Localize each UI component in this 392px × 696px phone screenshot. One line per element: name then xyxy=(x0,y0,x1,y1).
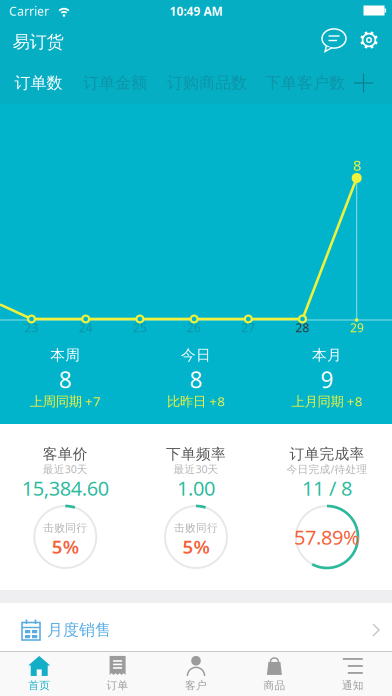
staticText: 1.00 xyxy=(177,475,215,501)
staticText: 5% xyxy=(182,534,209,559)
staticText: 今日完成/待处理 xyxy=(286,462,367,476)
staticText: 11 / 8 xyxy=(302,475,352,501)
staticText: 订购商品数 xyxy=(167,73,247,93)
staticText: 月度销售 xyxy=(47,620,111,640)
staticText: 最近30天 xyxy=(43,462,88,476)
staticText: 本周 xyxy=(50,346,80,364)
button[interactable]: 订单 xyxy=(78,651,157,696)
button[interactable]: Add metric xyxy=(351,71,375,95)
staticText: 23 xyxy=(24,319,38,335)
staticText: 通知 xyxy=(342,679,364,692)
staticText: 下单频率 xyxy=(166,445,226,463)
button[interactable]: 首页 xyxy=(0,651,78,696)
button[interactable]: 订单数 xyxy=(14,73,62,93)
staticText: 易订货 xyxy=(12,31,63,53)
staticText: 客户 xyxy=(185,679,207,692)
staticText: 订单数 xyxy=(14,73,62,93)
staticText: 订单完成率 xyxy=(289,445,364,463)
button[interactable]: 订购商品数 xyxy=(167,73,247,93)
button[interactable]: 月度销售 xyxy=(0,603,392,651)
button[interactable]: 订单金额 xyxy=(83,73,147,93)
staticText: 订单金额 xyxy=(83,73,147,93)
staticText: 8 xyxy=(189,364,202,394)
staticText: 下单客户数 xyxy=(265,73,345,93)
staticText: 上月同期 +8 xyxy=(291,392,362,410)
staticText: 本月 xyxy=(312,346,342,364)
staticText: 25 xyxy=(133,319,147,335)
button[interactable]: 客户 xyxy=(157,651,235,696)
staticText: 27 xyxy=(241,319,255,335)
staticText: 26 xyxy=(187,319,201,335)
staticText: 首页 xyxy=(28,679,50,692)
button[interactable]: 通知 xyxy=(314,651,392,696)
staticText: 击败同行 xyxy=(174,521,218,534)
button[interactable]: 商品 xyxy=(235,651,314,696)
staticText: 比昨日 +8 xyxy=(167,392,225,410)
staticText: 击败同行 xyxy=(43,521,87,534)
staticText: 5% xyxy=(52,534,79,559)
staticText: 29 xyxy=(350,319,364,335)
staticText: 28 xyxy=(295,319,309,335)
button[interactable]: Messages xyxy=(317,23,351,57)
staticText: 客单价 xyxy=(43,445,88,463)
button[interactable]: Settings xyxy=(352,23,386,57)
staticText: 上周同期 +7 xyxy=(30,392,101,410)
staticText: 8 xyxy=(353,155,361,175)
staticText: 今日 xyxy=(181,346,211,364)
staticText: 15,384.60 xyxy=(22,475,109,501)
staticText: 8 xyxy=(59,364,72,394)
staticText: 10:49 AM xyxy=(169,3,222,19)
button[interactable]: 下单客户数 xyxy=(265,73,345,93)
staticText: 商品 xyxy=(263,679,285,692)
staticText: Carrier xyxy=(9,3,49,19)
staticText: 9 xyxy=(320,364,333,394)
staticText: 订单 xyxy=(107,679,129,692)
staticText: 24 xyxy=(79,319,93,335)
staticText: 最近30天 xyxy=(173,462,218,476)
staticText: 57.89% xyxy=(294,524,360,550)
